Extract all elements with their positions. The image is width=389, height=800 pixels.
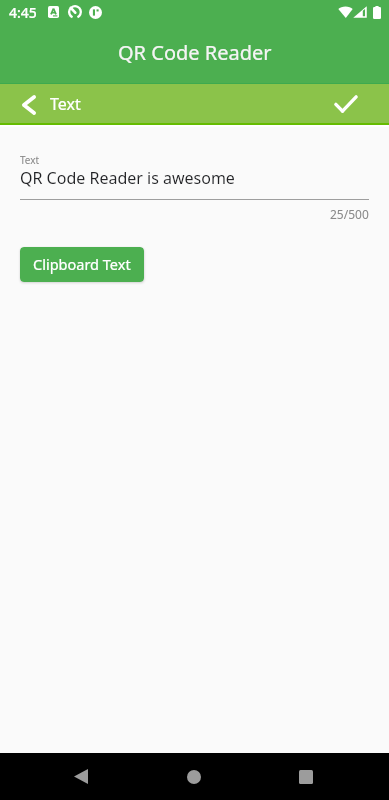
button[interactable]: Back (57, 753, 105, 800)
staticText: Text (20, 153, 40, 167)
button[interactable]: Text field (20, 148, 369, 200)
button[interactable]: Navigate up (6, 85, 51, 124)
staticText: QR Code Reader is awesome (20, 167, 235, 189)
staticText: 4:45 (9, 3, 37, 22)
button[interactable]: Clipboard Text (20, 247, 144, 282)
button[interactable]: Home (170, 753, 218, 800)
staticText: 25/500 (330, 206, 369, 222)
staticText: QR Code Reader (118, 39, 272, 66)
staticText: Text (50, 93, 81, 115)
button[interactable]: Recent apps (282, 753, 330, 800)
button[interactable]: Done (324, 84, 368, 123)
staticText: Clipboard Text (33, 254, 131, 274)
